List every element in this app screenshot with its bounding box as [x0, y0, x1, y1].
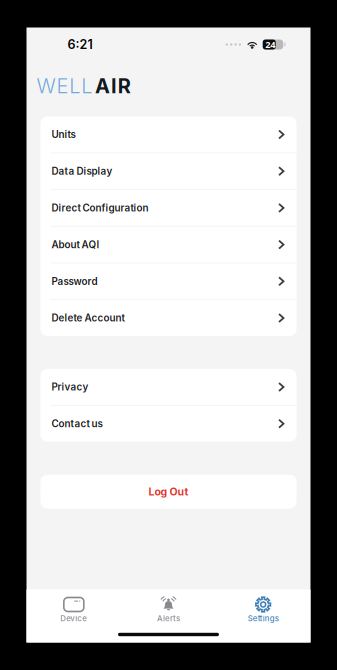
- staticText: 24: [265, 38, 275, 51]
- staticText: L: [69, 74, 80, 98]
- staticText: L: [81, 74, 92, 98]
- staticText: About AQI: [51, 239, 99, 250]
- staticText: Data Display: [51, 165, 112, 177]
- staticText: Contact us: [51, 418, 102, 430]
- staticText: E: [56, 74, 68, 98]
- button[interactable]: Alerts: [121, 593, 216, 622]
- button[interactable]: Data Display: [40, 153, 296, 190]
- button[interactable]: About AQI: [40, 227, 296, 263]
- staticText: Settings: [248, 614, 279, 623]
- button[interactable]: Privacy: [40, 369, 296, 406]
- button[interactable]: Direct Configuration: [40, 190, 296, 227]
- staticText: Direct Configuration: [51, 202, 148, 214]
- staticText: I: [111, 74, 117, 98]
- staticText: R: [118, 74, 131, 98]
- button[interactable]: Contact us: [40, 406, 296, 442]
- staticText: Device: [60, 614, 87, 623]
- button[interactable]: Log Out: [40, 475, 296, 509]
- button[interactable]: Delete Account: [40, 300, 296, 336]
- staticText: Password: [51, 275, 97, 287]
- button[interactable]: Password: [40, 263, 296, 300]
- staticText: Delete Account: [51, 312, 124, 324]
- staticText: Log Out: [148, 485, 188, 498]
- button[interactable]: Device: [26, 593, 121, 622]
- button[interactable]: Units: [40, 116, 296, 153]
- staticText: 6:21: [67, 37, 92, 52]
- staticText: Units: [51, 128, 75, 140]
- button[interactable]: Settings: [216, 593, 310, 622]
- staticText: A: [95, 74, 110, 98]
- staticText: W: [36, 74, 55, 98]
- staticText: Privacy: [51, 381, 88, 393]
- staticText: Alerts: [157, 614, 180, 623]
